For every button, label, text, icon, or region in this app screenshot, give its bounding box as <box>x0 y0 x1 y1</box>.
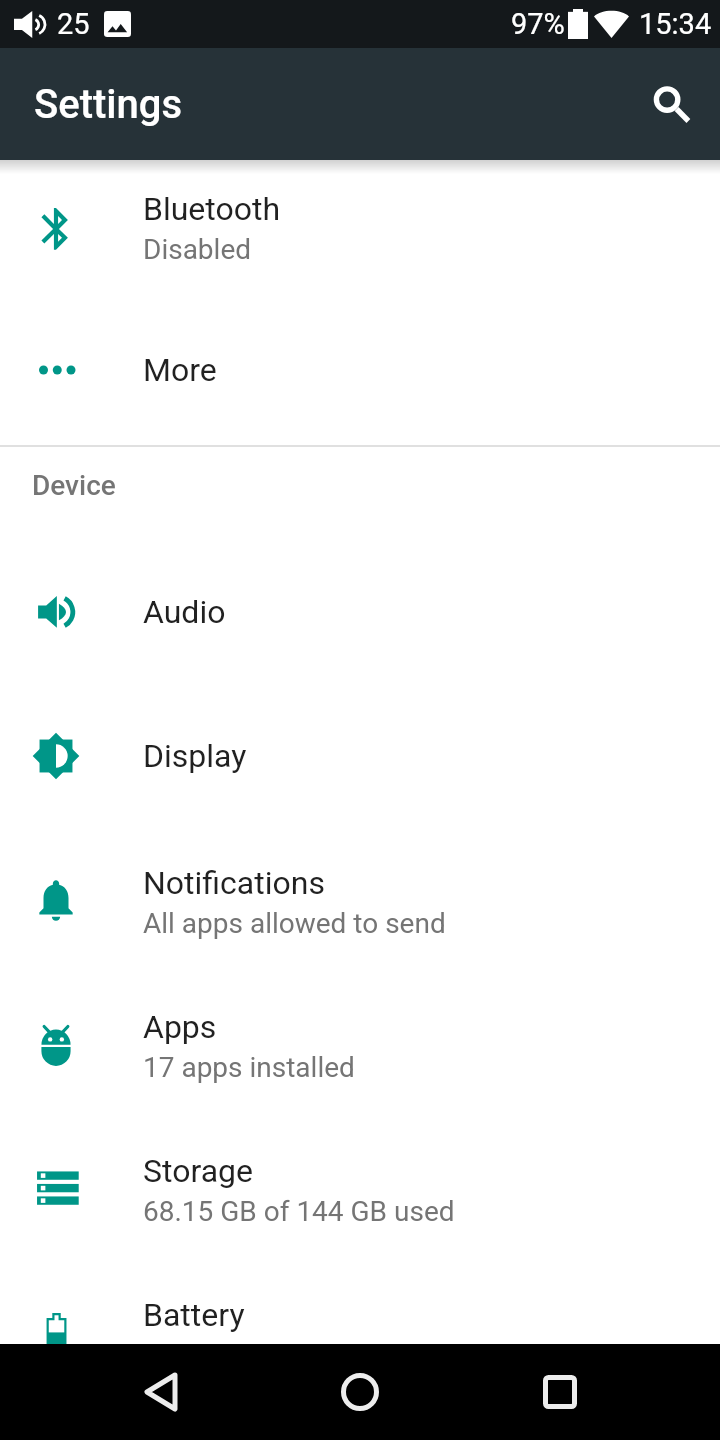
button[interactable]: Recent apps <box>512 1344 608 1440</box>
staticText: Disabled <box>143 233 252 266</box>
staticText: More <box>143 351 217 389</box>
button[interactable]: Storage <box>0 1116 720 1260</box>
staticText: 17 apps installed <box>143 1051 355 1084</box>
staticText: 15:34 <box>639 7 712 41</box>
staticText: Apps <box>143 1008 217 1046</box>
staticText: Audio <box>143 593 226 631</box>
button[interactable]: Notifications <box>0 828 720 972</box>
staticText: Display <box>143 737 247 775</box>
button[interactable]: Search <box>622 56 718 152</box>
button[interactable]: Home <box>312 1344 408 1440</box>
staticText: Settings <box>34 81 183 128</box>
staticText: 68.15 GB of 144 GB used <box>143 1195 455 1228</box>
button[interactable]: Battery <box>0 1260 720 1404</box>
staticText: 25 <box>57 7 90 41</box>
button[interactable]: Bluetooth <box>0 154 720 298</box>
button[interactable]: Display <box>0 684 720 828</box>
button[interactable]: Apps <box>0 972 720 1116</box>
staticText: 100% - charging <box>143 1339 341 1372</box>
staticText: Bluetooth <box>143 190 281 228</box>
staticText: Battery <box>143 1296 245 1334</box>
staticText: All apps allowed to send <box>143 907 446 940</box>
staticText: Storage <box>143 1152 253 1190</box>
button[interactable]: More <box>0 298 720 442</box>
staticText: Notifications <box>143 864 325 902</box>
button[interactable]: Back <box>113 1344 209 1440</box>
staticText: Device <box>32 469 116 502</box>
staticText: 97% <box>511 7 565 41</box>
button[interactable]: Audio <box>0 540 720 684</box>
